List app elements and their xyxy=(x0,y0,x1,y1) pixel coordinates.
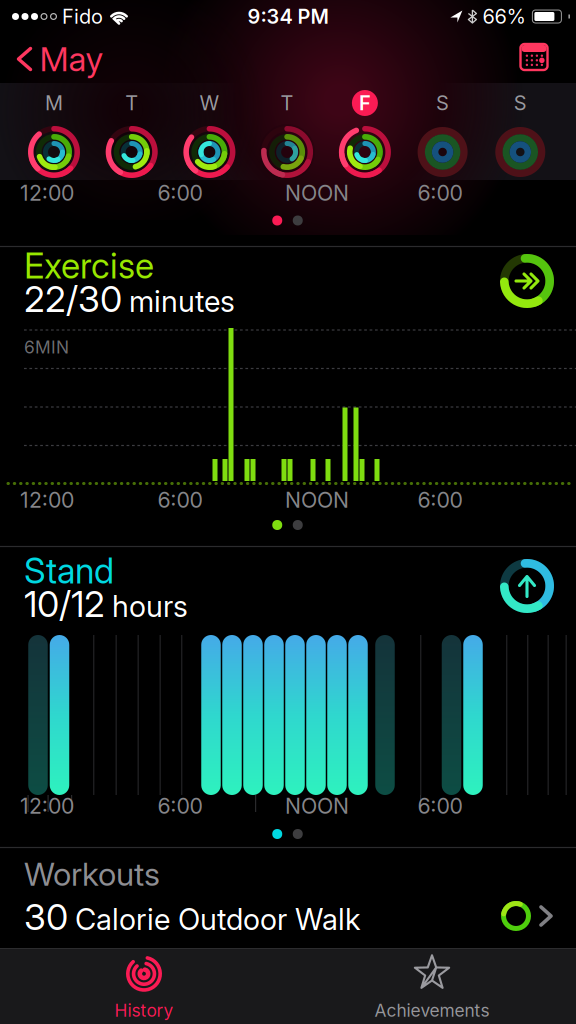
staticText: 10/12 xyxy=(24,583,105,625)
button[interactable]: Stand detail xyxy=(500,559,554,613)
button[interactable]: Exercise detail xyxy=(500,254,554,308)
button[interactable]: Calendar xyxy=(520,44,547,70)
staticText: 6:00 xyxy=(157,180,202,206)
staticText: W xyxy=(199,91,219,115)
staticText: S xyxy=(514,91,527,115)
button[interactable]: 30 xyxy=(0,894,576,940)
button[interactable]: W activity rings xyxy=(178,89,240,178)
staticText: 6:00 xyxy=(417,793,462,819)
staticText: 6:00 xyxy=(157,487,202,513)
staticText: May xyxy=(39,39,103,79)
button[interactable]: T activity rings xyxy=(101,89,163,178)
staticText: 9:34 PM xyxy=(247,5,328,28)
staticText: 12:00 xyxy=(20,180,74,206)
staticText: 6:00 xyxy=(417,180,462,206)
staticText: F xyxy=(359,91,371,115)
button[interactable]: T activity rings xyxy=(256,89,318,178)
staticText: 12:00 xyxy=(20,793,74,819)
staticText: 6MIN xyxy=(24,337,69,357)
button[interactable]: F activity rings xyxy=(334,89,396,178)
button[interactable]: Back to May xyxy=(18,39,103,79)
staticText: Fido xyxy=(62,5,103,28)
button[interactable]: Achievements xyxy=(288,951,576,1024)
staticText: hours xyxy=(112,589,188,624)
button[interactable]: S activity rings xyxy=(412,89,474,178)
staticText: minutes xyxy=(129,284,235,319)
staticText: M xyxy=(45,91,63,115)
staticText: 66% xyxy=(482,5,525,28)
staticText: T xyxy=(125,91,138,115)
staticText: History xyxy=(114,1000,173,1021)
staticText: 30 xyxy=(24,896,68,938)
button[interactable]: S activity rings xyxy=(489,89,551,178)
button[interactable]: M activity rings xyxy=(23,89,85,178)
staticText: 6:00 xyxy=(417,487,462,513)
staticText: NOON xyxy=(285,180,349,206)
staticText: Achievements xyxy=(374,1000,489,1021)
staticText: NOON xyxy=(285,487,349,513)
staticText: 22/30 xyxy=(24,278,122,320)
staticText: T xyxy=(281,91,294,115)
staticText: 12:00 xyxy=(20,487,74,513)
staticText: Exercise xyxy=(24,246,154,286)
staticText: S xyxy=(436,91,449,115)
staticText: Workouts xyxy=(24,855,160,893)
staticText: Calorie Outdoor Walk xyxy=(75,902,361,937)
staticText: NOON xyxy=(285,793,349,819)
staticText: 6:00 xyxy=(157,793,202,819)
button[interactable]: History xyxy=(0,951,288,1024)
staticText: Stand xyxy=(24,551,114,591)
